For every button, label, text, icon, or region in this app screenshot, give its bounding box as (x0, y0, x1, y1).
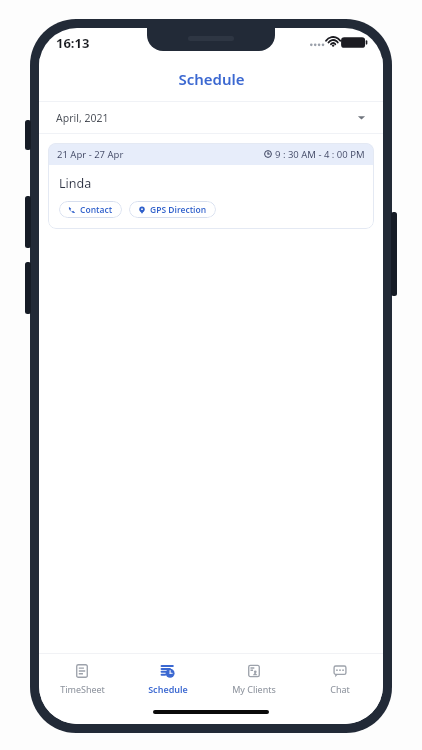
staticText: April, 2021 (56, 111, 109, 125)
staticText: My Clients (232, 683, 276, 695)
staticText: GPS Direction (150, 204, 207, 216)
staticText: Schedule (178, 69, 245, 89)
staticText: Chat (330, 683, 350, 695)
staticText: Linda (59, 175, 92, 192)
staticText: Contact (80, 204, 113, 216)
staticText: 21 Apr - 27 Apr (57, 148, 124, 161)
button[interactable]: 21 Apr - 27 Apr (48, 143, 374, 229)
other: Select month (357, 113, 366, 122)
button[interactable]: Contact (59, 201, 122, 218)
button[interactable]: Schedule (125, 654, 211, 704)
button[interactable]: TimeSheet (39, 654, 125, 704)
button[interactable]: April, 2021 (39, 102, 383, 133)
button[interactable]: My Clients (211, 654, 297, 704)
staticText: TimeSheet (60, 683, 105, 695)
button[interactable]: GPS Direction (129, 201, 216, 218)
staticText: 9 : 30 AM - 4 : 00 PM (275, 148, 365, 161)
staticText: Schedule (148, 683, 188, 695)
staticText: 16:13 (56, 34, 90, 52)
button[interactable]: Chat (297, 654, 383, 704)
